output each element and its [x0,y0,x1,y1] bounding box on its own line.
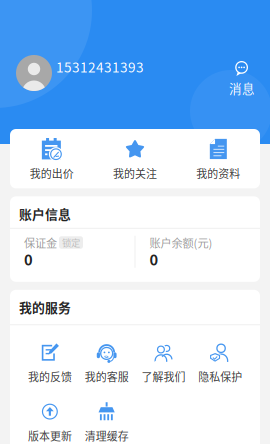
staticText: 我的资料 [196,167,240,179]
staticText: 隐私保护 [198,370,242,383]
button[interactable]: 我的出价 [10,138,93,179]
button[interactable]: 我的关注 [93,138,177,179]
button[interactable]: 我的资料 [177,138,260,179]
staticText: 消息 [229,81,255,95]
staticText: 我的服务 [19,300,71,314]
staticText: 锁定 [62,237,80,248]
button[interactable]: 消息 [225,61,259,95]
staticText: 账户余额(元) [149,236,212,249]
staticText: 0 [149,251,158,267]
staticText: 0 [24,251,33,267]
button[interactable]: 了解我们 [135,342,192,383]
button[interactable]: 隐私保护 [192,342,249,383]
button[interactable]: 我的反馈 [21,342,78,383]
staticText: 15312431393 [56,59,144,74]
staticText: 我的出价 [30,167,74,179]
staticText: 我的客服 [85,370,129,383]
staticText: 我的反馈 [28,370,72,383]
staticText: 账户信息 [19,206,71,221]
staticText: 保证金 [24,236,57,249]
button[interactable]: 版本更新 [21,402,78,442]
staticText: 版本更新 [28,430,72,442]
staticText: 了解我们 [141,370,185,383]
staticText: 我的关注 [113,167,157,179]
button[interactable]: 我的客服 [78,342,135,383]
button[interactable]: 清理缓存 [78,402,135,442]
staticText: 清理缓存 [85,430,129,442]
